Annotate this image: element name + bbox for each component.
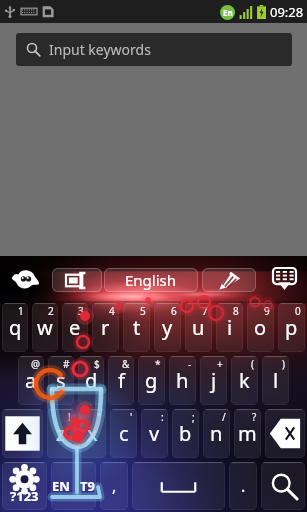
staticText: 9 xyxy=(264,304,270,318)
button[interactable]: t xyxy=(123,303,150,352)
button[interactable]: f xyxy=(108,356,134,405)
staticText: & xyxy=(122,357,130,371)
button[interactable]: x xyxy=(79,409,106,458)
button[interactable]: w xyxy=(32,303,58,352)
staticText: T9 xyxy=(80,477,95,495)
button[interactable]: m xyxy=(234,409,261,458)
button[interactable]: English xyxy=(104,268,198,292)
button[interactable]: e xyxy=(62,303,88,352)
staticText: ? xyxy=(252,410,257,424)
staticText: ) xyxy=(282,357,285,371)
staticText: l xyxy=(273,367,279,394)
staticText: n xyxy=(210,420,223,447)
staticText: + xyxy=(217,357,223,371)
staticText: v xyxy=(149,420,160,447)
staticText: / xyxy=(222,410,226,424)
button[interactable] xyxy=(51,462,96,510)
staticText: x xyxy=(87,420,98,447)
button[interactable]: o xyxy=(247,303,274,352)
staticText: w xyxy=(37,314,53,341)
staticText: Input keywords xyxy=(49,40,151,59)
staticText: English xyxy=(125,270,177,290)
staticText: ' xyxy=(130,410,133,424)
staticText: # xyxy=(63,357,70,371)
staticText: " xyxy=(97,410,102,424)
staticText: ! xyxy=(68,410,71,424)
staticText: z xyxy=(56,420,66,447)
staticText: 0 xyxy=(295,304,301,318)
button[interactable]: l xyxy=(262,356,289,405)
button[interactable]: Search xyxy=(261,462,305,510)
button[interactable]: y xyxy=(154,303,181,352)
button[interactable]: j xyxy=(200,356,227,405)
staticText: EN xyxy=(52,477,70,495)
staticText: k xyxy=(239,367,250,394)
button[interactable]: c xyxy=(110,409,137,458)
staticText: e xyxy=(69,314,81,341)
button[interactable]: i xyxy=(216,303,243,352)
staticText: j xyxy=(211,367,217,394)
button[interactable]: Hide keyboard xyxy=(262,256,307,301)
button[interactable]: Space xyxy=(132,462,225,510)
button[interactable]: Handwriting xyxy=(202,268,256,292)
staticText: s xyxy=(56,367,66,394)
staticText: 09:28 xyxy=(270,3,304,21)
staticText: ( xyxy=(251,357,254,371)
staticText: ?123 xyxy=(10,487,39,505)
staticText: 7 xyxy=(202,304,208,318)
button[interactable]: Shift xyxy=(2,409,43,458)
staticText: @ xyxy=(31,357,40,371)
staticText: . xyxy=(241,475,246,497)
staticText: 6 xyxy=(171,304,177,318)
button[interactable]: p xyxy=(278,303,305,352)
staticText: i xyxy=(227,314,233,341)
staticText: r xyxy=(101,314,110,341)
staticText: u xyxy=(192,314,205,341)
staticText: f xyxy=(118,367,125,394)
staticText: 8 xyxy=(233,304,239,318)
staticText: t xyxy=(133,314,141,341)
staticText: q xyxy=(9,314,22,341)
staticText: En xyxy=(223,7,233,18)
staticText: 2 xyxy=(48,304,54,318)
button[interactable]: z xyxy=(47,409,75,458)
staticText: g xyxy=(145,367,158,394)
staticText: m xyxy=(238,420,257,447)
button[interactable]: Input keywords xyxy=(16,33,292,66)
staticText: d xyxy=(85,367,98,394)
staticText: h xyxy=(176,367,189,394)
staticText: 5 xyxy=(140,304,146,318)
staticText: - xyxy=(188,357,192,371)
button[interactable]: r xyxy=(92,303,119,352)
button[interactable]: g xyxy=(138,356,165,405)
button[interactable]: , xyxy=(100,462,128,510)
button[interactable]: k xyxy=(231,356,258,405)
staticText: ; xyxy=(192,410,195,424)
button[interactable]: u xyxy=(185,303,212,352)
staticText: o xyxy=(254,314,267,341)
staticText: * xyxy=(155,357,161,371)
button[interactable]: b xyxy=(172,409,199,458)
button[interactable]: v xyxy=(141,409,168,458)
button[interactable]: n xyxy=(203,409,230,458)
button[interactable]: q xyxy=(2,303,28,352)
staticText: c xyxy=(119,420,129,447)
button[interactable]: d xyxy=(78,356,104,405)
button[interactable]: . xyxy=(229,462,257,510)
button[interactable]: Switch input method xyxy=(52,268,102,292)
staticText: 3 xyxy=(78,304,84,318)
staticText: p xyxy=(285,314,298,341)
button[interactable]: Symbols xyxy=(2,462,47,510)
staticText: : xyxy=(161,410,164,424)
staticText: $ xyxy=(94,357,100,371)
staticText: a xyxy=(25,367,37,394)
staticText: , xyxy=(112,475,117,497)
button[interactable]: Backspace xyxy=(265,409,305,458)
staticText: y xyxy=(162,314,173,341)
button[interactable]: s xyxy=(48,356,74,405)
staticText: 4 xyxy=(109,304,115,318)
button[interactable]: a xyxy=(18,356,44,405)
staticText: b xyxy=(179,420,192,447)
button[interactable]: h xyxy=(169,356,196,405)
button[interactable]: GO Keyboard menu xyxy=(0,256,52,301)
